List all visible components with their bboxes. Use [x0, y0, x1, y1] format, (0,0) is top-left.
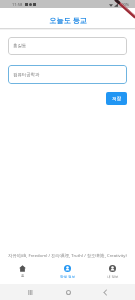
button[interactable]: Recent apps: [22, 284, 38, 300]
staticText: 11:58: [12, 2, 23, 7]
staticText: 홈: [21, 274, 25, 279]
button[interactable]: 컴퓨터공학과: [8, 65, 127, 84]
button[interactable]: 내 정보: [90, 260, 135, 284]
staticText: 100%: [119, 2, 130, 7]
staticText: 컴퓨터공학과: [13, 72, 40, 78]
button[interactable]: 홍길동: [8, 37, 127, 55]
staticText: 저장: [112, 96, 121, 102]
staticText: 홍길동: [13, 43, 27, 49]
button[interactable]: Back: [97, 284, 113, 300]
button[interactable]: 저장: [106, 92, 127, 105]
button[interactable]: Home: [60, 284, 76, 300]
button[interactable]: 학생 정보: [45, 260, 90, 284]
button[interactable]: 홈: [0, 260, 45, 284]
staticText: 자유(自由, Freedom) / 진리(眞理, Truth) / 창조(創造,…: [8, 253, 127, 259]
staticText: 오늘도 등교: [49, 15, 87, 25]
staticText: 내 정보: [107, 274, 119, 279]
staticText: 학생 정보: [60, 274, 76, 279]
